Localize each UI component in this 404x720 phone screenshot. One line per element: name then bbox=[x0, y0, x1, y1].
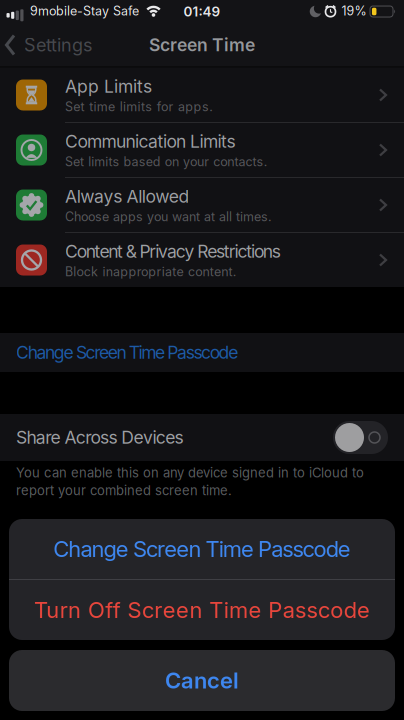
staticText: Change Screen Time Passcode bbox=[16, 342, 238, 363]
button[interactable]: App Limits bbox=[0, 68, 404, 122]
staticText: 01:49 bbox=[183, 3, 220, 20]
staticText: Settings bbox=[24, 34, 93, 56]
staticText: Screen Time bbox=[149, 34, 255, 56]
staticText: Set time limits for apps. bbox=[65, 99, 213, 114]
staticText: Block inappropriate content. bbox=[65, 264, 237, 279]
staticText: 9mobile-Stay Safe bbox=[30, 3, 139, 18]
staticText: Content & Privacy Restrictions bbox=[65, 241, 281, 262]
button[interactable]: Change Screen Time Passcode bbox=[9, 519, 395, 579]
button[interactable]: Share Across Devices bbox=[333, 421, 388, 454]
staticText: Cancel bbox=[165, 667, 239, 694]
staticText: Share Across Devices bbox=[16, 427, 184, 448]
button[interactable]: Cancel bbox=[9, 650, 395, 711]
staticText: report your combined screen time. bbox=[16, 483, 232, 498]
button[interactable]: Turn Off Screen Time Passcode bbox=[9, 580, 395, 640]
staticText: You can enable this on any device signed… bbox=[16, 465, 364, 481]
staticText: Turn Off Screen Time Passcode bbox=[34, 597, 370, 623]
button[interactable]: Change Screen Time Passcode bbox=[0, 333, 404, 372]
staticText: Set limits based on your contacts. bbox=[65, 154, 268, 169]
staticText: Change Screen Time Passcode bbox=[53, 536, 351, 562]
button[interactable]: Content & Privacy Restrictions bbox=[0, 233, 404, 287]
staticText: App Limits bbox=[65, 76, 152, 97]
staticText: Communication Limits bbox=[65, 131, 235, 152]
staticText: Always Allowed bbox=[65, 186, 189, 207]
staticText: 19% bbox=[341, 3, 366, 18]
button[interactable]: Always Allowed bbox=[0, 178, 404, 232]
button[interactable]: Settings bbox=[5, 34, 93, 56]
button[interactable]: Communication Limits bbox=[0, 123, 404, 177]
staticText: Choose apps you want at all times. bbox=[65, 209, 272, 224]
